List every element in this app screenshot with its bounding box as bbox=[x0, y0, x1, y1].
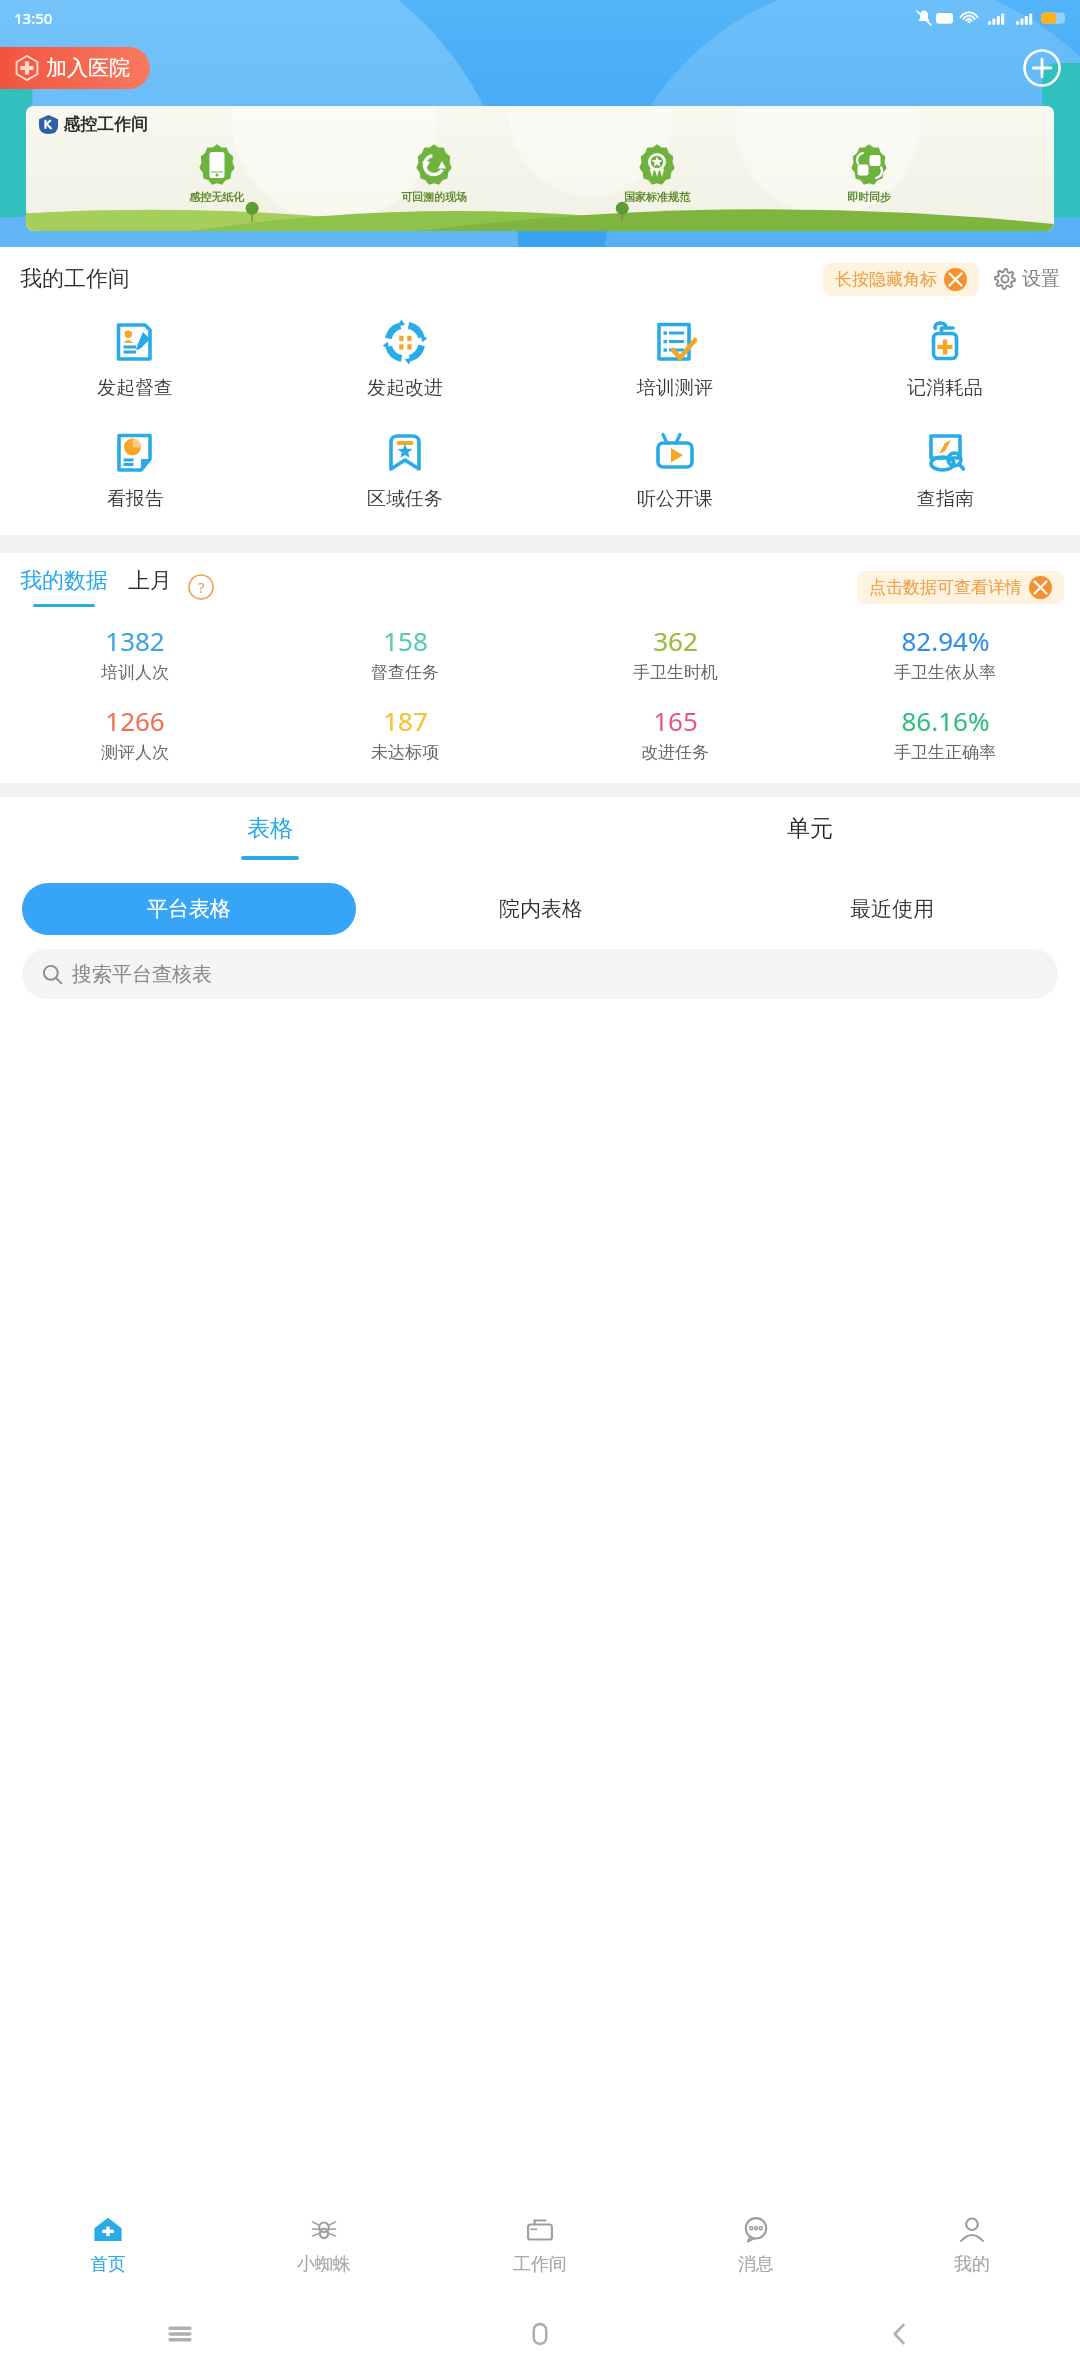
staticText: 督查任务 bbox=[371, 662, 439, 683]
staticText: 改进任务 bbox=[641, 742, 709, 763]
button[interactable]: 发起改进 bbox=[270, 311, 540, 406]
staticText: 手卫生时机 bbox=[633, 662, 718, 683]
staticText: 消息 bbox=[738, 2253, 774, 2276]
button[interactable]: 单元 bbox=[540, 797, 1080, 877]
button[interactable]: 区域任务 bbox=[270, 422, 540, 517]
staticText: 院内表格 bbox=[499, 896, 583, 922]
button[interactable]: Help bbox=[188, 574, 214, 600]
button[interactable]: 加入医院 bbox=[0, 47, 150, 89]
staticText: 165 bbox=[653, 703, 698, 738]
staticText: 听公开课 bbox=[637, 487, 713, 511]
button[interactable]: 362 bbox=[540, 621, 810, 685]
button[interactable]: 小蜘蛛 bbox=[216, 2196, 432, 2292]
button[interactable]: Home bbox=[360, 2292, 720, 2376]
staticText: 国家标准规范 bbox=[624, 190, 690, 204]
staticText: 培训人次 bbox=[101, 662, 169, 683]
staticText: 13:50 bbox=[14, 8, 53, 28]
staticText: 区域任务 bbox=[367, 487, 443, 511]
staticText: 单元 bbox=[787, 814, 833, 843]
button[interactable]: 平台表格 bbox=[22, 883, 356, 935]
staticText: 158 bbox=[383, 623, 428, 658]
staticText: 187 bbox=[383, 703, 428, 738]
staticText: 1266 bbox=[105, 703, 165, 738]
button[interactable]: Add bbox=[1022, 48, 1062, 88]
button[interactable]: 首页 bbox=[0, 2196, 216, 2292]
button[interactable]: 187 bbox=[270, 701, 540, 765]
staticText: ? bbox=[198, 577, 205, 597]
button[interactable]: 培训测评 bbox=[540, 311, 810, 406]
staticText: 搜索平台查核表 bbox=[72, 962, 212, 987]
button[interactable]: 165 bbox=[540, 701, 810, 765]
staticText: 点击数据可查看详情 bbox=[869, 577, 1022, 598]
button[interactable]: 听公开课 bbox=[540, 422, 810, 517]
button[interactable]: 发起督查 bbox=[0, 311, 270, 406]
button[interactable]: Back bbox=[720, 2292, 1080, 2376]
staticText: 手卫生依从率 bbox=[894, 662, 996, 683]
staticText: 培训测评 bbox=[637, 376, 713, 400]
staticText: 工作间 bbox=[513, 2253, 567, 2276]
button[interactable]: 看报告 bbox=[0, 422, 270, 517]
staticText: 看报告 bbox=[107, 487, 164, 511]
staticText: 1382 bbox=[105, 623, 165, 658]
staticText: 设置 bbox=[1022, 267, 1060, 291]
button[interactable]: 我的数据 bbox=[20, 567, 108, 607]
button[interactable]: 消息 bbox=[648, 2196, 864, 2292]
staticText: 362 bbox=[653, 623, 698, 658]
staticText: 发起改进 bbox=[367, 376, 443, 400]
button[interactable]: 搜索平台查核表 bbox=[22, 949, 1058, 999]
button[interactable]: 1382 bbox=[0, 621, 270, 685]
staticText: 可回溯的现场 bbox=[401, 190, 467, 204]
button[interactable]: 记消耗品 bbox=[810, 311, 1080, 406]
staticText: 我的数据 bbox=[20, 567, 108, 595]
staticText: 表格 bbox=[247, 814, 293, 843]
staticText: 长按隐藏角标 bbox=[835, 269, 937, 290]
staticText: 加入医院 bbox=[46, 55, 130, 81]
button[interactable]: 上月 bbox=[128, 567, 172, 607]
staticText: 首页 bbox=[90, 2253, 126, 2276]
staticText: 未达标项 bbox=[371, 742, 439, 763]
staticText: 记消耗品 bbox=[907, 376, 983, 400]
button[interactable]: 工作间 bbox=[432, 2196, 648, 2292]
staticText: 82.94% bbox=[901, 623, 990, 658]
staticText: 我的工作间 bbox=[20, 265, 130, 293]
button[interactable]: 设置 bbox=[993, 261, 1060, 297]
button[interactable]: 我的 bbox=[864, 2196, 1080, 2292]
button[interactable]: 点击数据可查看详情 bbox=[857, 571, 1064, 604]
staticText: 发起督查 bbox=[97, 376, 173, 400]
staticText: 感控无纸化 bbox=[189, 190, 244, 204]
staticText: 平台表格 bbox=[147, 896, 231, 922]
staticText: 我的 bbox=[954, 2253, 990, 2276]
button[interactable]: Recents bbox=[0, 2292, 360, 2376]
button[interactable]: 表格 bbox=[0, 797, 540, 877]
staticText: 即时同步 bbox=[847, 190, 891, 204]
button[interactable]: 86.16% bbox=[810, 701, 1080, 765]
staticText: 感控工作间 bbox=[63, 114, 148, 135]
button[interactable]: 查指南 bbox=[810, 422, 1080, 517]
staticText: 小蜘蛛 bbox=[297, 2253, 351, 2276]
button[interactable]: 最近使用 bbox=[725, 883, 1058, 935]
button[interactable]: 长按隐藏角标 bbox=[823, 263, 979, 296]
button[interactable]: 感控工作间 bbox=[26, 106, 1054, 231]
staticText: 手卫生正确率 bbox=[894, 742, 996, 763]
staticText: 上月 bbox=[128, 567, 172, 595]
button[interactable]: 158 bbox=[270, 621, 540, 685]
staticText: 86.16% bbox=[901, 703, 990, 738]
button[interactable]: 院内表格 bbox=[374, 883, 707, 935]
button[interactable]: 82.94% bbox=[810, 621, 1080, 685]
staticText: 查指南 bbox=[917, 487, 974, 511]
button[interactable]: 1266 bbox=[0, 701, 270, 765]
staticText: 最近使用 bbox=[850, 896, 934, 922]
staticText: 测评人次 bbox=[101, 742, 169, 763]
